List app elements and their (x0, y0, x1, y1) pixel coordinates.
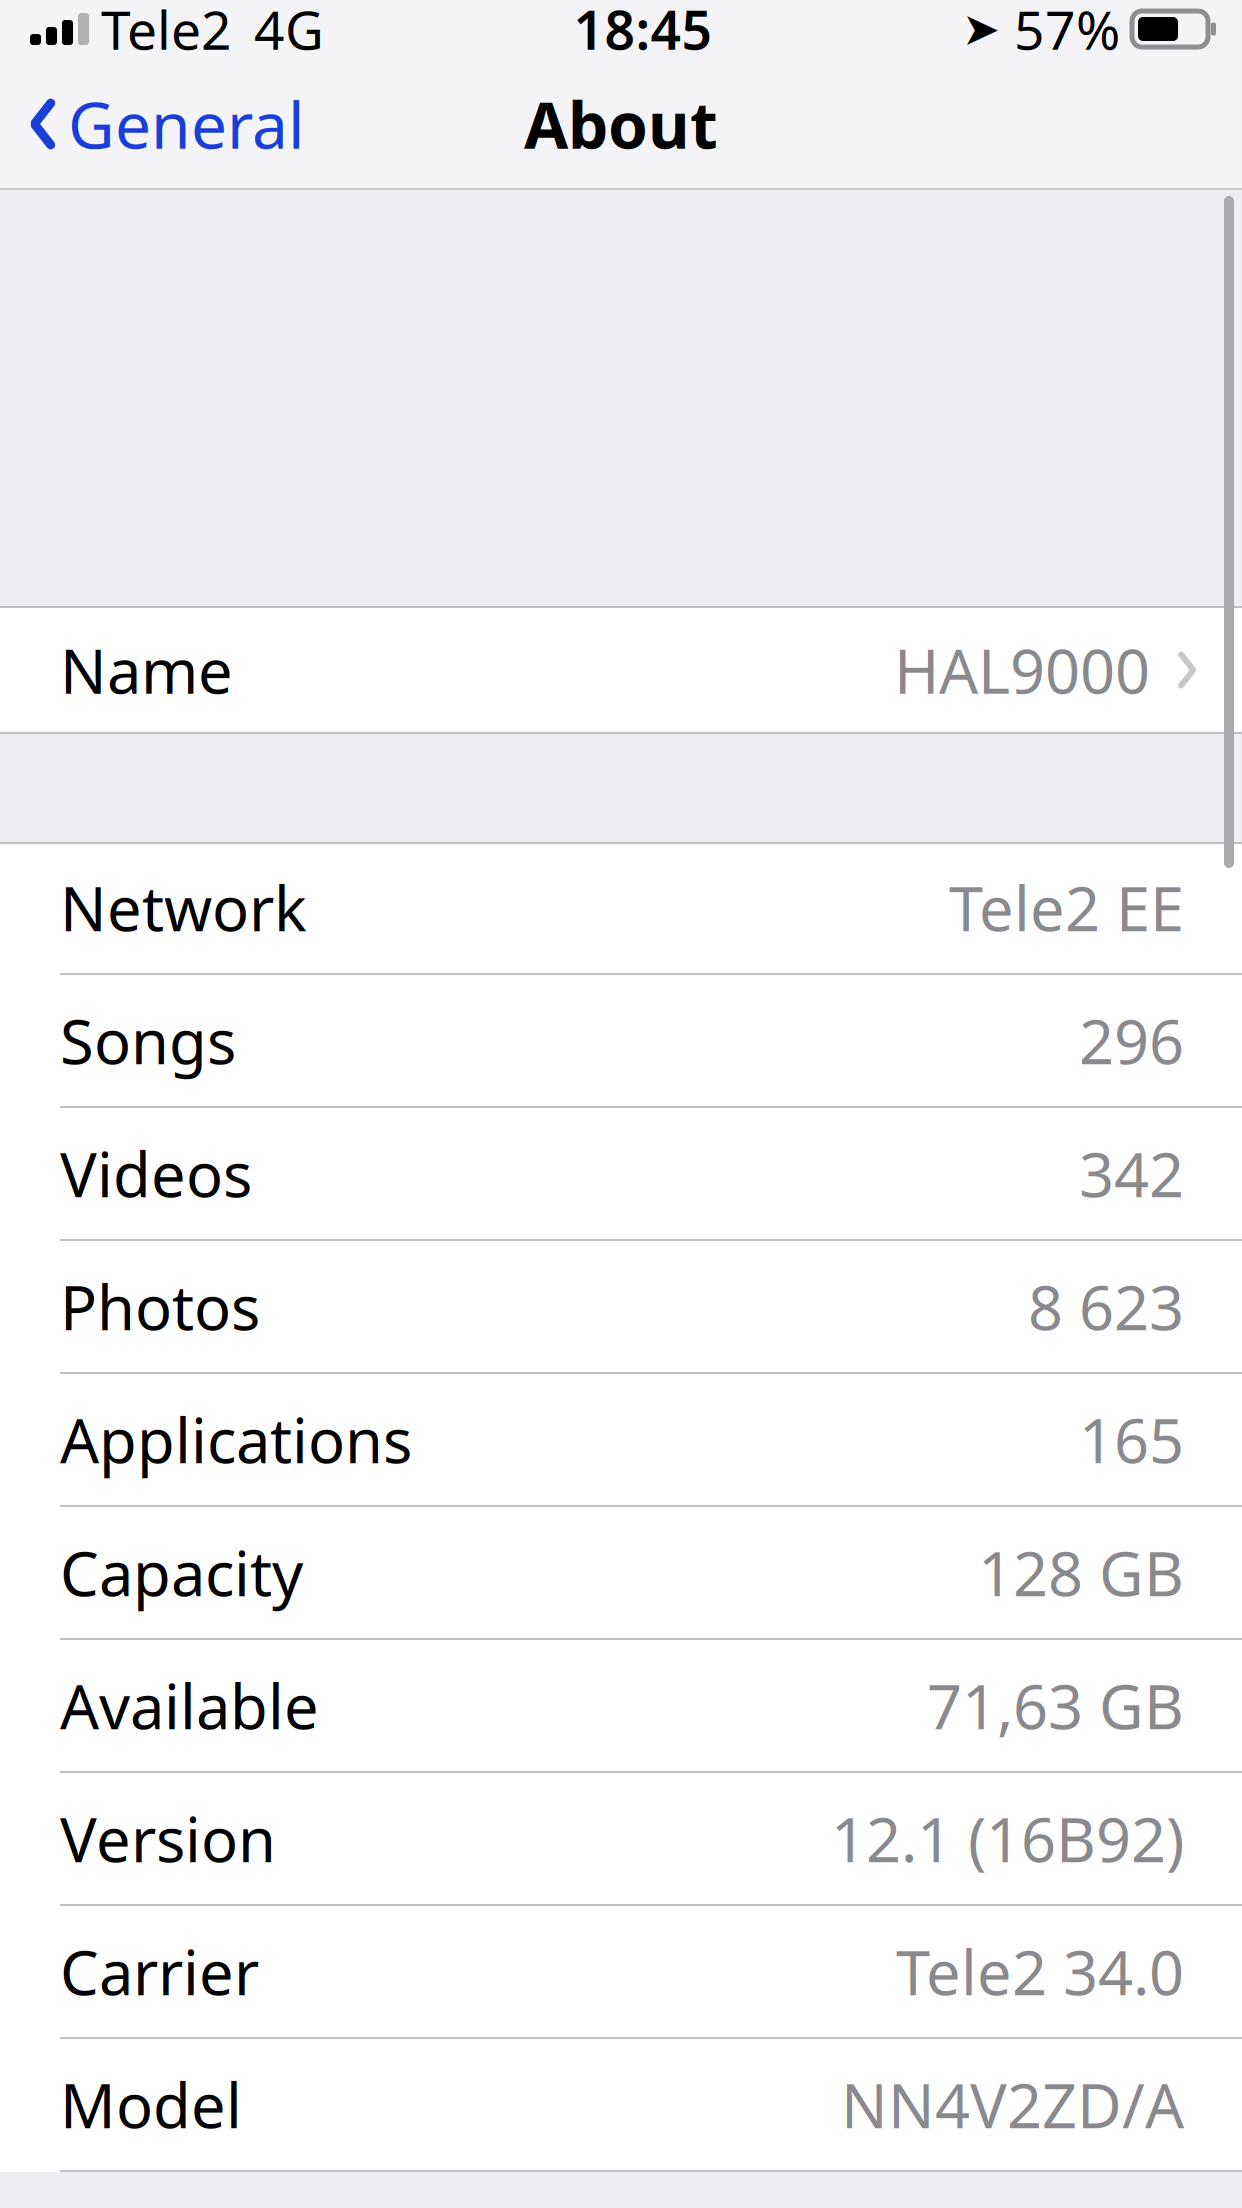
staticText: Tele2 (101, 0, 232, 64)
staticText: General (68, 81, 305, 166)
staticText: 8 623 (1028, 1266, 1184, 1347)
staticText: 128 GB (978, 1532, 1184, 1613)
staticText: ➤ (962, 3, 1000, 55)
staticText: About (524, 81, 718, 166)
staticText: Videos (60, 1133, 252, 1214)
staticText: 18:45 (573, 0, 712, 64)
staticText: 342 (1079, 1133, 1184, 1214)
button[interactable]: General (0, 74, 323, 174)
staticText: Name (60, 629, 233, 711)
staticText: Network (60, 867, 307, 948)
staticText: Capacity (60, 1532, 303, 1613)
staticText: Available (60, 1665, 319, 1746)
staticText: 57% (1014, 0, 1120, 64)
staticText: 165 (1079, 1399, 1184, 1480)
staticText: Applications (60, 1399, 412, 1480)
staticText: 4G (254, 0, 324, 64)
staticText: NN4V2ZD/A (841, 2064, 1184, 2145)
staticText: Model (60, 2064, 242, 2145)
staticText: Carrier (60, 1931, 259, 2012)
staticText: Tele2 34.0 (896, 1931, 1184, 2012)
staticText: 71,63 GB (927, 1665, 1184, 1746)
staticText: Version (60, 1798, 276, 1879)
button[interactable]: Name (0, 606, 1242, 734)
staticText: Tele2 EE (949, 867, 1184, 948)
staticText: 296 (1079, 1000, 1184, 1081)
staticText: Photos (60, 1266, 260, 1347)
staticText: HAL9000 (894, 629, 1150, 711)
staticText: Songs (60, 1000, 236, 1081)
staticText: 12.1 (16B92) (831, 1798, 1184, 1879)
